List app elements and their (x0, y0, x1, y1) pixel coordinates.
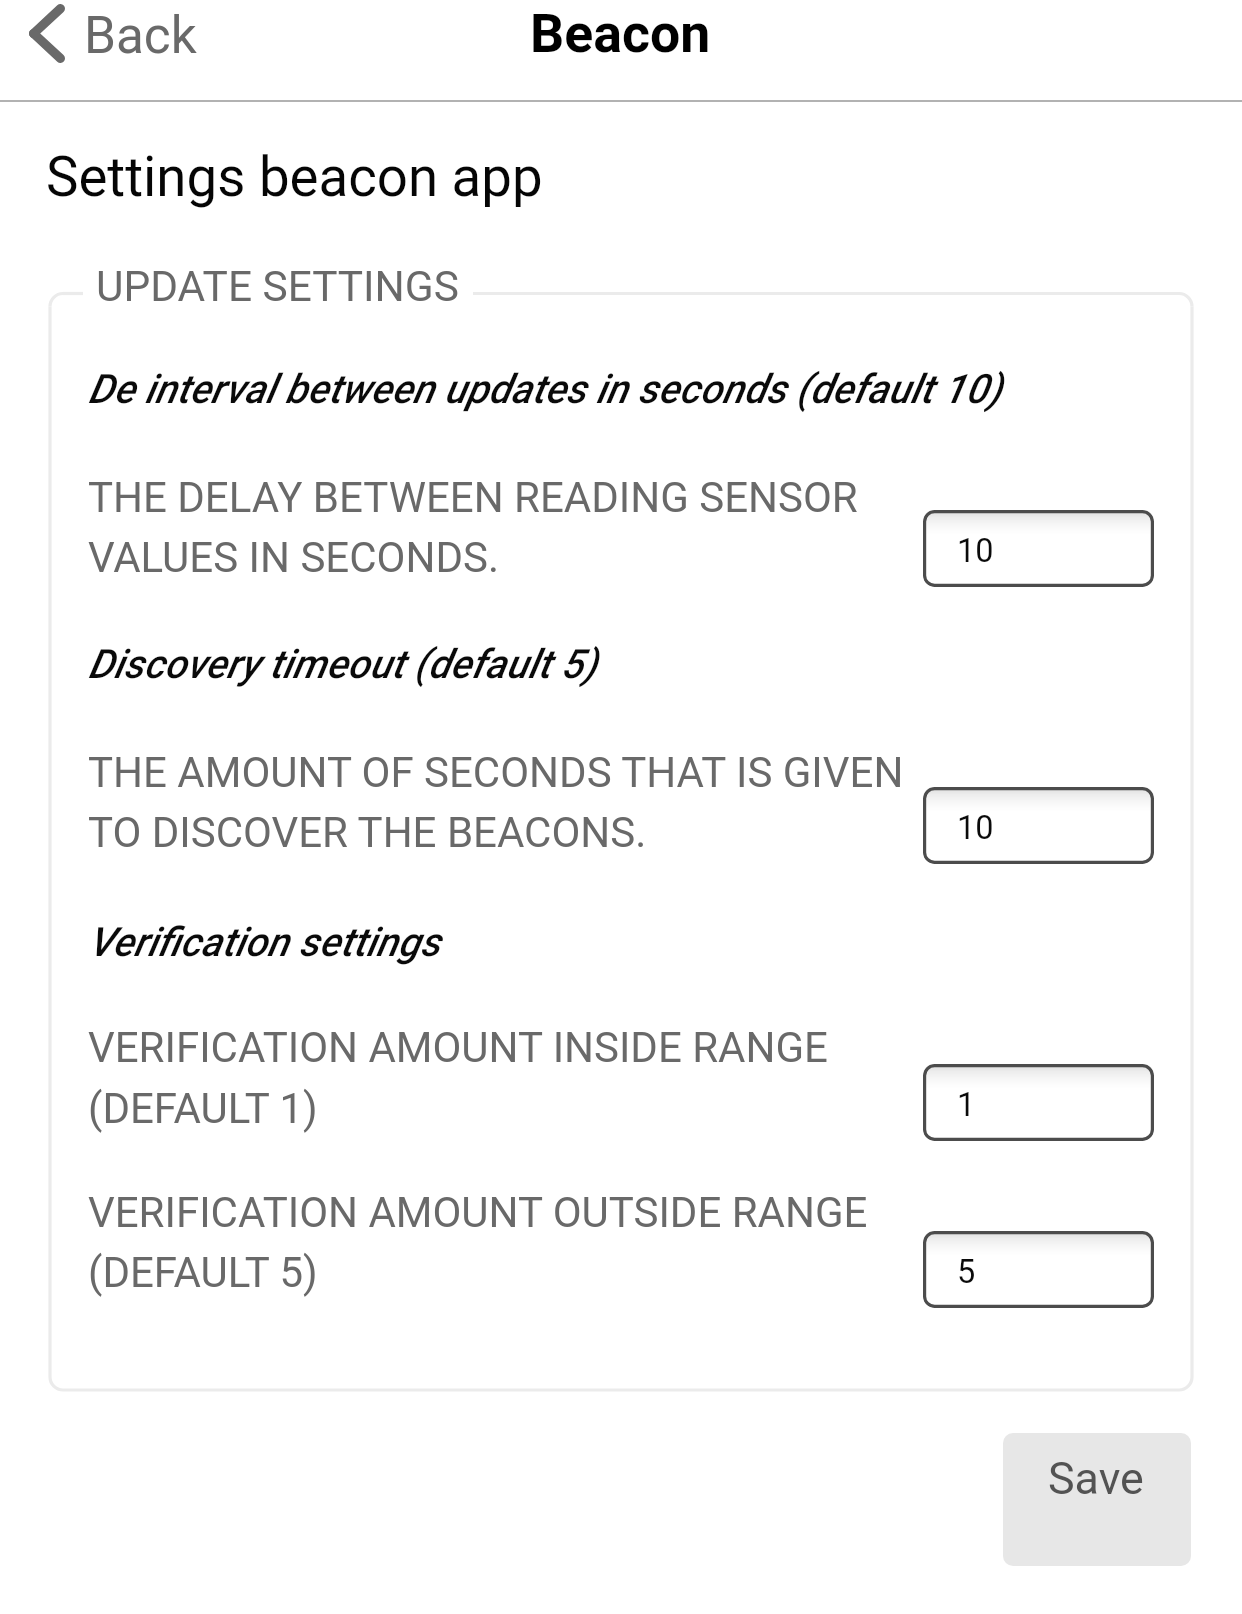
staticText: 5 (957, 1253, 976, 1291)
staticText: Verification settings (88, 919, 441, 966)
other: Back (29, 4, 65, 63)
button[interactable]: Discovery timeout in seconds (923, 787, 1154, 864)
staticText: Back (84, 5, 197, 65)
button[interactable]: Delay between reading sensor values in s… (923, 510, 1154, 587)
staticText: VERIFICATION AMOUNT INSIDE RANGE (DEFAUL… (88, 1014, 938, 1136)
button[interactable]: Verification amount outside range (923, 1231, 1154, 1308)
staticText: 1 (957, 1086, 976, 1124)
staticText: Save (1048, 1452, 1144, 1505)
staticText: VERIFICATION AMOUNT OUTSIDE RANGE (DEFAU… (88, 1179, 938, 1299)
button[interactable]: Save (1003, 1433, 1191, 1566)
button[interactable]: Verification amount inside range (923, 1064, 1154, 1141)
staticText: 10 (957, 809, 994, 847)
staticText: UPDATE SETTINGS (96, 262, 459, 312)
staticText: Settings beacon app (46, 145, 543, 209)
staticText: Beacon (530, 2, 711, 65)
staticText: THE DELAY BETWEEN READING SENSOR VALUES … (88, 464, 938, 584)
staticText: De interval between updates in seconds (… (88, 365, 1002, 412)
staticText: THE AMOUNT OF SECONDS THAT IS GIVEN TO D… (88, 739, 938, 859)
staticText: 10 (957, 532, 994, 570)
staticText: Discovery timeout (default 5) (88, 641, 597, 688)
button[interactable]: Back (18, 0, 218, 85)
